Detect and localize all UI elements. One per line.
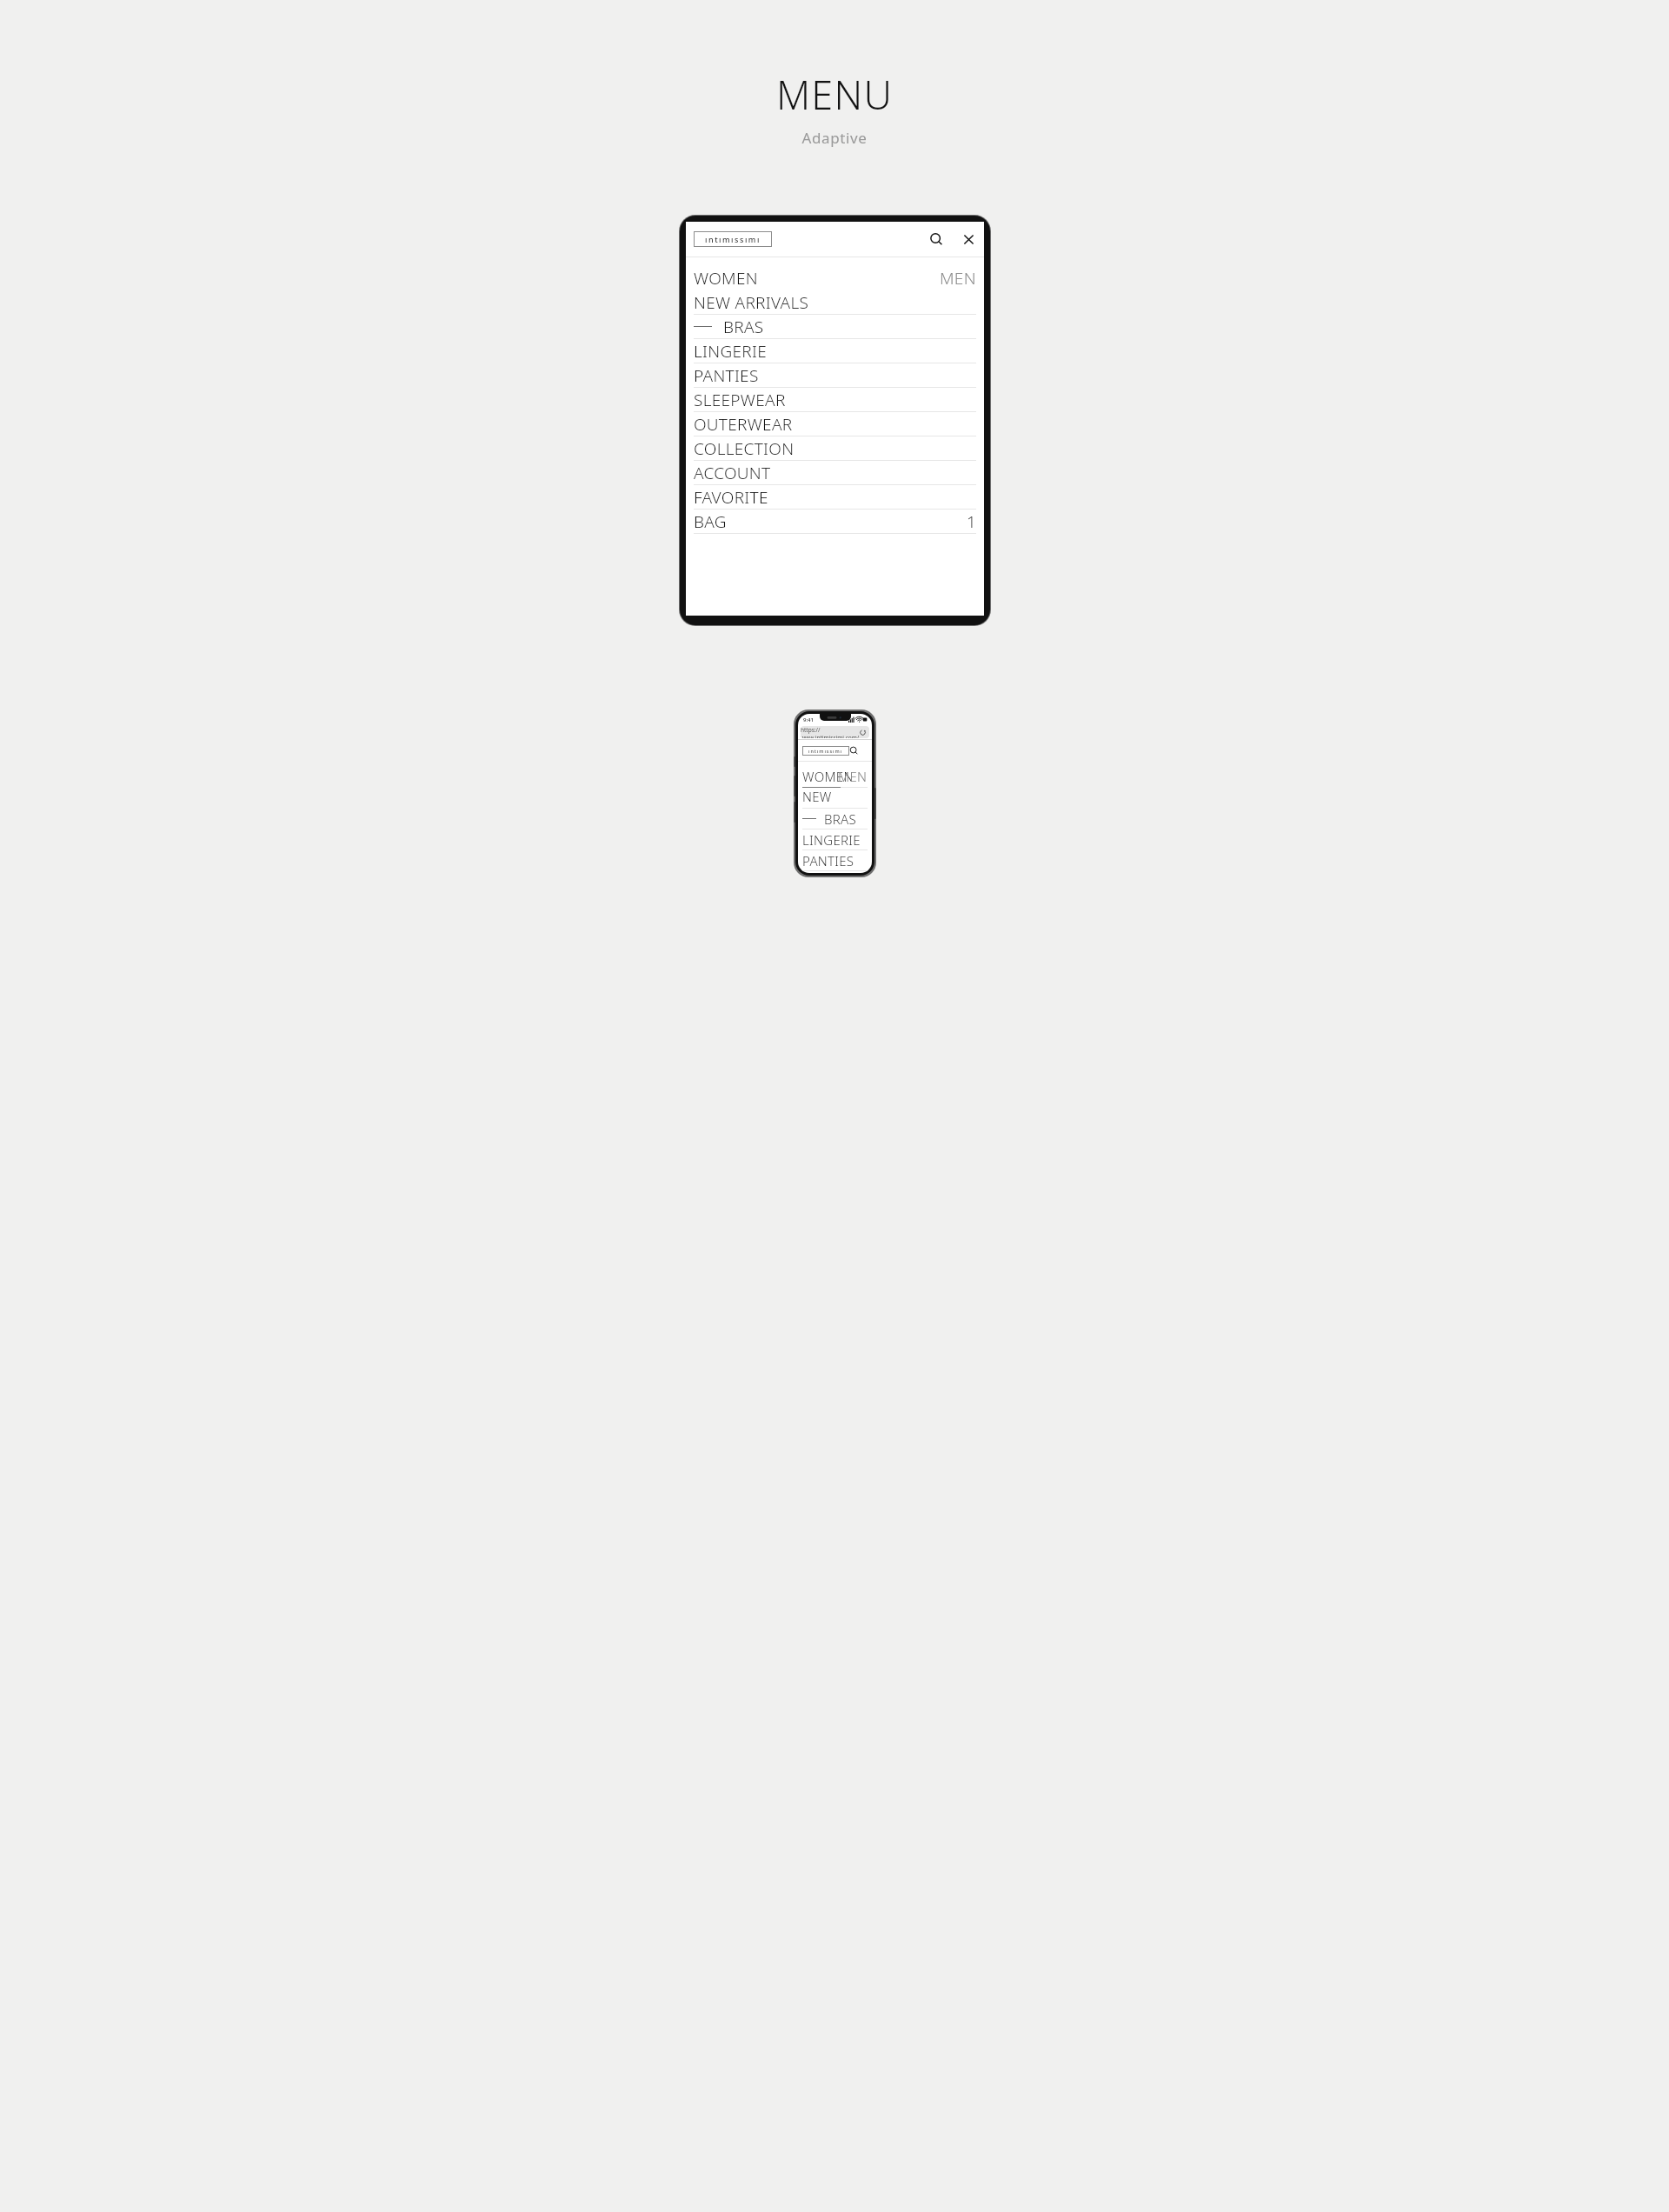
button[interactable]: SLEEPWEAR bbox=[802, 871, 868, 873]
button[interactable]: MEN bbox=[940, 267, 976, 290]
button[interactable]: ıntımıssımı bbox=[802, 746, 849, 756]
staticText: WOMEN bbox=[802, 768, 854, 785]
button[interactable]: OUTERWEAR bbox=[694, 412, 976, 436]
button[interactable]: WOMEN bbox=[802, 768, 854, 788]
staticText: NEW ARRIVALS bbox=[802, 788, 868, 808]
button[interactable]: FAVORITE bbox=[694, 485, 976, 510]
button[interactable]: Close bbox=[961, 232, 976, 247]
staticText: https://www.intimissimi.com/ bbox=[801, 726, 869, 738]
staticText: NEW ARRIVALS bbox=[694, 291, 809, 314]
staticText: PANTIES bbox=[802, 852, 854, 869]
staticText: BRAS bbox=[723, 316, 764, 338]
button[interactable]: LINGERIE bbox=[802, 829, 868, 850]
staticText: Adaptive bbox=[0, 128, 1669, 148]
staticText: 1 bbox=[967, 510, 976, 533]
staticText: LINGERIE bbox=[694, 340, 768, 363]
button[interactable]: PANTIES bbox=[802, 850, 868, 871]
other: Reload bbox=[860, 730, 866, 736]
button[interactable]: MEN bbox=[838, 768, 868, 788]
staticText: LINGERIE bbox=[802, 831, 861, 849]
staticText: MENU bbox=[0, 68, 1669, 121]
staticText: COLLECTION bbox=[694, 437, 795, 460]
button[interactable]: SLEEPWEAR bbox=[694, 388, 976, 412]
staticText: 9:41 bbox=[803, 716, 814, 723]
staticText: ıntımıssımı bbox=[705, 234, 761, 244]
button[interactable]: Search bbox=[929, 232, 944, 247]
staticText: BRAS bbox=[824, 810, 856, 828]
staticText: PANTIES bbox=[694, 364, 759, 387]
button[interactable]: Search bbox=[849, 746, 859, 756]
button[interactable]: BRAS bbox=[802, 809, 868, 829]
staticText: MEN bbox=[838, 768, 868, 785]
staticText: SLEEPWEAR bbox=[802, 871, 868, 873]
staticText: FAVORITE bbox=[694, 486, 768, 509]
button[interactable]: LINGERIE bbox=[694, 339, 976, 363]
button[interactable]: NEW ARRIVALS bbox=[802, 788, 868, 809]
staticText: OUTERWEAR bbox=[694, 413, 793, 436]
button[interactable]: BAG bbox=[694, 510, 976, 534]
staticText: BAG bbox=[694, 510, 727, 533]
button[interactable]: https://www.intimissimi.com/ bbox=[801, 726, 869, 738]
button[interactable]: NEW ARRIVALS bbox=[694, 290, 976, 315]
staticText: WOMEN bbox=[694, 267, 758, 290]
button[interactable]: ACCOUNT bbox=[694, 461, 976, 485]
staticText: MEN bbox=[940, 267, 976, 290]
button[interactable]: WOMEN bbox=[694, 267, 758, 290]
staticText: ACCOUNT bbox=[694, 462, 771, 484]
button[interactable]: COLLECTION bbox=[694, 436, 976, 461]
button[interactable]: PANTIES bbox=[694, 363, 976, 388]
button[interactable]: ıntımıssımı bbox=[694, 231, 772, 247]
staticText: SLEEPWEAR bbox=[694, 389, 786, 411]
staticText: ıntımıssımı bbox=[808, 748, 843, 754]
button[interactable]: BRAS bbox=[694, 315, 976, 339]
